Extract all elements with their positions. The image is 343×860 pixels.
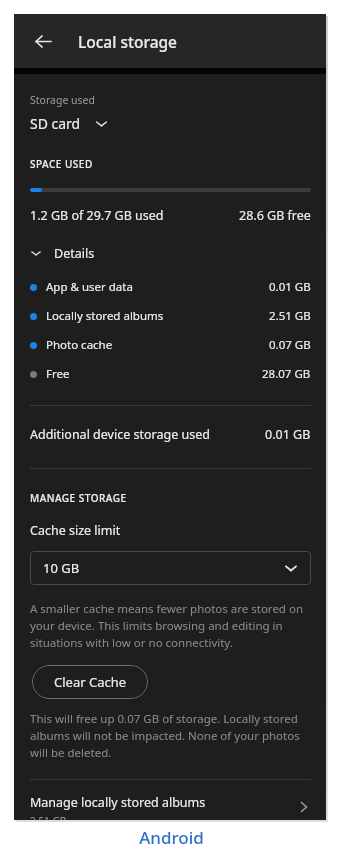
button[interactable]: Clear Cache	[32, 665, 148, 699]
staticText: This will free up 0.07 GB of storage. Lo…	[30, 711, 309, 761]
staticText: 2.51 GB	[269, 308, 311, 324]
staticText: SPACE USED	[30, 157, 93, 171]
button[interactable]: 10 GB	[30, 551, 311, 585]
staticText: Details	[54, 245, 95, 262]
staticText: 28.07 GB	[262, 366, 311, 382]
staticText: SD card	[30, 114, 81, 133]
button[interactable]: Locally stored albums	[14, 304, 326, 328]
staticText: Storage used	[30, 93, 95, 107]
staticText: 0.01 GB	[265, 426, 311, 443]
staticText: 0.01 GB	[269, 279, 311, 295]
button[interactable]: App & user data	[14, 275, 326, 299]
button[interactable]: Photo cache	[14, 333, 326, 357]
staticText: 10 GB	[43, 559, 80, 577]
staticText: Local storage	[78, 31, 177, 52]
button[interactable]: Free	[14, 362, 326, 386]
staticText: Photo cache	[46, 337, 269, 353]
staticText: Additional device storage used	[30, 426, 210, 443]
staticText: A smaller cache means fewer photos are s…	[30, 601, 309, 651]
button[interactable]: SD card	[14, 113, 124, 134]
staticText: Cache size limit	[30, 522, 121, 539]
staticText: 1.2 GB of 29.7 GB used	[30, 207, 164, 224]
staticText: 2.51 GB	[30, 814, 67, 820]
staticText: Manage locally stored albums	[30, 794, 206, 811]
staticText: App & user data	[46, 279, 269, 295]
button[interactable]: Details	[14, 240, 326, 266]
button[interactable]: Back	[24, 22, 62, 60]
button[interactable]: Additional device storage used	[14, 426, 326, 443]
staticText: 28.6 GB free	[239, 207, 311, 224]
staticText: Locally stored albums	[46, 308, 269, 324]
button[interactable]: Manage locally stored albums	[14, 794, 326, 820]
staticText: Android	[0, 826, 343, 849]
staticText: 0.07 GB	[269, 337, 311, 353]
staticText: MANAGE STORAGE	[30, 491, 127, 505]
staticText: Free	[46, 366, 262, 382]
staticText: Clear Cache	[54, 673, 127, 691]
